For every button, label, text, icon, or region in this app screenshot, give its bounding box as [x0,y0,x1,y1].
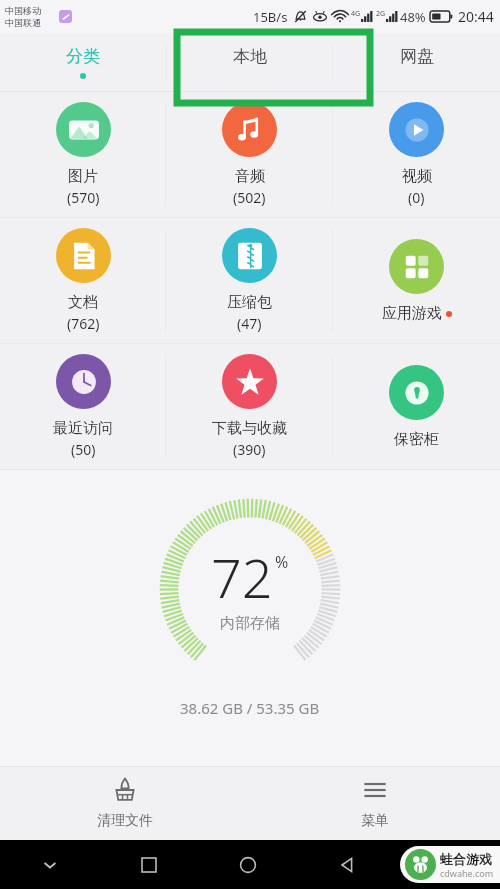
staticText: 本地 [233,46,267,67]
button[interactable]: Recent apps [99,840,198,889]
staticText: (390) [233,440,266,459]
button[interactable]: Back [297,840,396,889]
staticText: 最近访问 [53,419,113,438]
staticText: (502) [233,188,266,207]
staticText: 菜单 [361,812,389,830]
button[interactable]: 应用游戏 [333,218,500,343]
staticText: 20:44 [458,7,494,26]
staticText: 15B/s [253,8,288,26]
button[interactable]: 视频 [333,92,500,217]
staticText: 图片 [68,167,98,186]
staticText: (50) [71,440,96,459]
staticText: 38.62 GB / 53.35 GB [180,698,320,718]
button[interactable]: 图片 [0,92,166,217]
button[interactable]: 网盘 [333,33,500,91]
staticText: 压缩包 [227,293,272,312]
staticText: 应用游戏 [382,304,442,323]
staticText: 保密柜 [394,430,439,449]
staticText: 72 [211,540,273,614]
staticText: 视频 [402,167,432,186]
button[interactable]: 压缩包 [166,218,333,343]
staticText: (47) [237,314,262,333]
button[interactable]: Hide navigation [0,840,99,889]
staticText: % [275,551,289,573]
staticText: 中国联通 [5,17,41,28]
button[interactable]: 最近访问 [0,344,166,469]
button[interactable]: 本地 [166,33,333,91]
staticText: 文档 [68,293,98,312]
staticText: 蛙合游戏 [440,851,492,867]
staticText: 分类 [66,46,100,67]
button[interactable]: Home [198,840,297,889]
button[interactable]: 音频 [166,92,333,217]
staticText: cdwahe.com [440,867,494,879]
button[interactable]: 文档 [0,218,166,343]
staticText: 48% [400,8,426,26]
staticText: (762) [67,314,100,333]
button[interactable]: 分类 [0,33,166,91]
button[interactable]: 清理文件 [0,767,250,840]
button[interactable]: 保密柜 [333,344,500,469]
staticText: (570) [67,188,100,207]
staticText: (0) [408,188,425,207]
staticText: 中国移动 [5,5,41,16]
staticText: 2G [376,9,386,19]
staticText: 下载与收藏 [212,419,287,438]
staticText: 内部存储 [220,614,280,633]
staticText: 清理文件 [97,812,153,830]
button[interactable]: 下载与收藏 [166,344,333,469]
button[interactable]: 菜单 [250,767,500,840]
staticText: 网盘 [400,46,434,67]
staticText: 音频 [235,167,265,186]
staticText: 4G [351,9,361,19]
